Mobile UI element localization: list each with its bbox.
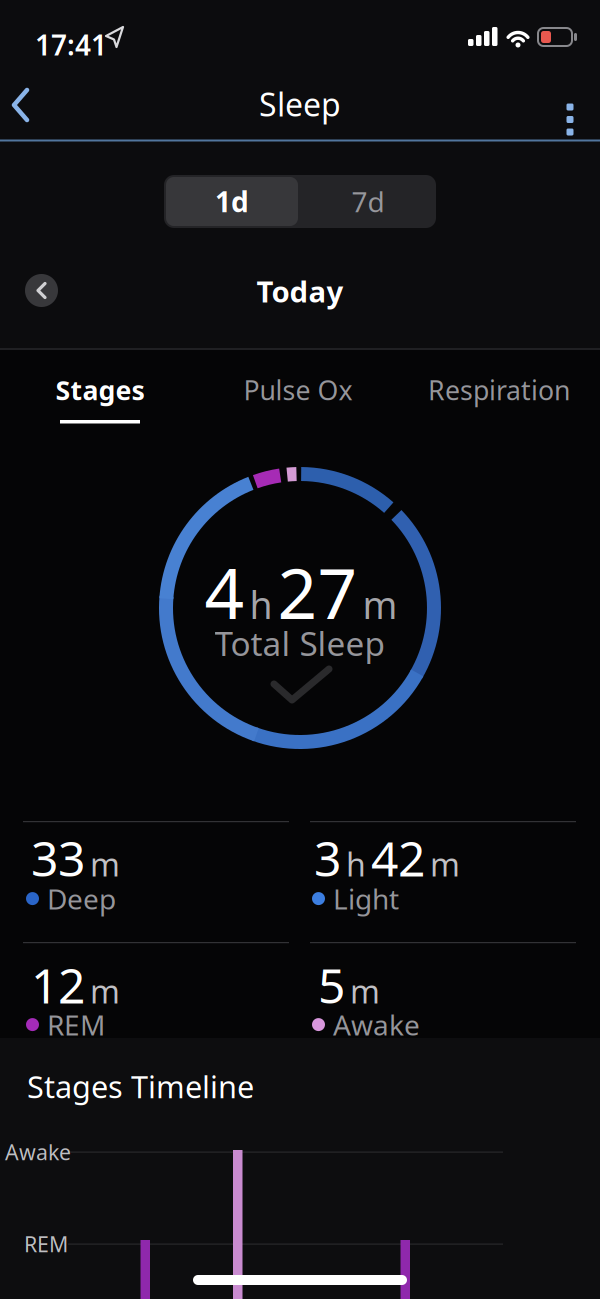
staticText: 4 [204, 546, 244, 638]
staticText: REM [24, 1230, 68, 1258]
staticText: 42 [371, 826, 425, 890]
staticText: 5 [318, 953, 345, 1017]
staticText: 27 [277, 546, 357, 638]
staticText: Stages Timeline [27, 1066, 254, 1107]
staticText: Awake [333, 1006, 420, 1043]
staticText: Today [256, 271, 343, 310]
button[interactable]: Stages [0, 349, 200, 433]
button[interactable]: 7d [302, 177, 434, 226]
staticText: Stages [55, 372, 144, 408]
staticText: 12 [31, 953, 85, 1017]
staticText: 17:41 [35, 26, 107, 63]
staticText: Light [333, 880, 399, 917]
staticText: m [90, 843, 120, 885]
button[interactable]: Pulse Ox [200, 349, 400, 433]
staticText: m [362, 580, 397, 629]
staticText: Total Sleep [214, 621, 385, 665]
staticText: Sleep [259, 83, 341, 125]
button[interactable]: Previous day [25, 274, 58, 307]
staticText: Awake [5, 1138, 71, 1166]
staticText: 1d [215, 183, 249, 220]
staticText: Deep [47, 880, 116, 917]
staticText: REM [47, 1006, 105, 1043]
staticText: h [346, 843, 366, 885]
staticText: 7d [351, 183, 384, 220]
staticText: Pulse Ox [243, 372, 352, 408]
staticText: h [249, 580, 272, 629]
staticText: m [90, 970, 120, 1012]
staticText: 33 [31, 826, 85, 890]
button[interactable]: 1d [166, 177, 298, 226]
staticText: 3 [314, 826, 341, 890]
button[interactable]: More options [538, 87, 574, 123]
button[interactable]: Respiration [400, 349, 600, 433]
staticText: m [350, 970, 380, 1012]
staticText: m [430, 843, 460, 885]
button[interactable]: Back [6, 87, 46, 123]
staticText: Respiration [428, 372, 570, 408]
